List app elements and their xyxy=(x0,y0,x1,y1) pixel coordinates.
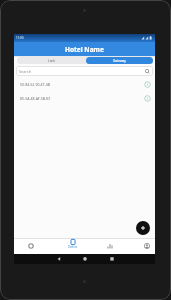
button[interactable]: Lock xyxy=(17,57,86,64)
button[interactable] xyxy=(23,238,39,254)
button[interactable] xyxy=(102,238,118,254)
button[interactable] xyxy=(139,238,155,254)
button[interactable]: 50-84-52-90-47-4B xyxy=(14,78,155,91)
staticText: Gateway xyxy=(113,59,126,63)
button[interactable]: Gateway xyxy=(86,57,153,64)
button[interactable]: Search xyxy=(19,66,150,76)
staticText: 85-5A-48-AF-5B-B1 xyxy=(20,96,51,101)
staticText: Lock xyxy=(48,59,55,63)
button[interactable] xyxy=(136,221,150,235)
staticText: Hotel Name xyxy=(65,45,104,54)
staticText: Search xyxy=(19,69,32,74)
button[interactable]: Devices xyxy=(64,239,82,254)
staticText: Devices xyxy=(68,245,78,249)
staticText: 50-84-52-90-47-4B xyxy=(20,82,50,87)
staticText: 11:05 xyxy=(16,36,24,40)
button[interactable]: 85-5A-48-AF-5B-B1 xyxy=(14,92,155,105)
